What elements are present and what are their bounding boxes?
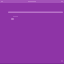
button[interactable]: Action (11, 18, 14, 20)
button[interactable] (8, 11, 63, 13)
button[interactable]: Menu (0, 0, 64, 3)
